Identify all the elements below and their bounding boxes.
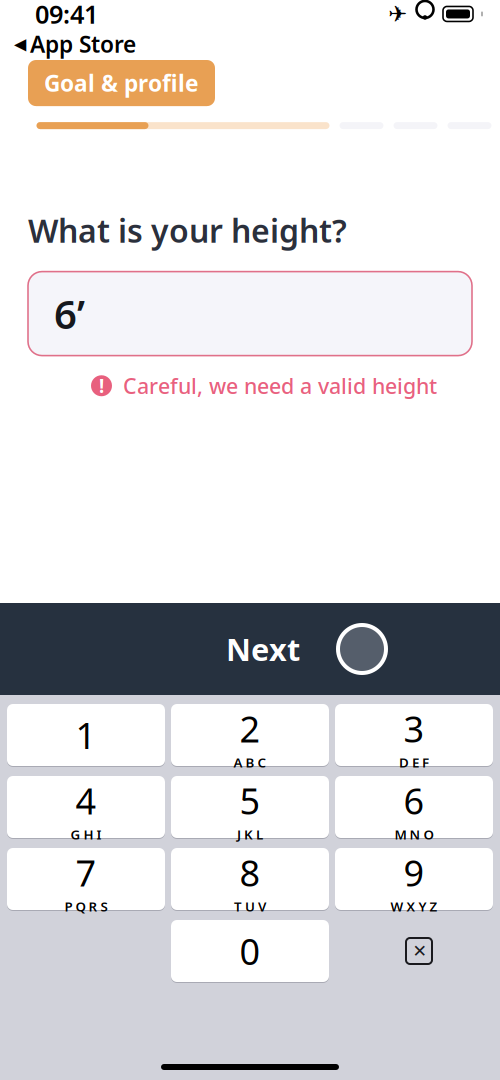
staticText: 2 bbox=[239, 705, 260, 752]
staticText: 9 bbox=[403, 849, 424, 896]
staticText: T U V bbox=[234, 898, 266, 915]
button[interactable]: Record bbox=[336, 623, 388, 675]
button[interactable]: 0 bbox=[171, 919, 329, 983]
button[interactable]: Delete bbox=[335, 919, 493, 983]
staticText: Careful, we need a valid height bbox=[123, 372, 437, 400]
button[interactable]: 7 bbox=[7, 847, 165, 911]
button[interactable]: 4 bbox=[7, 775, 165, 839]
staticText: 5 bbox=[239, 777, 260, 824]
button[interactable]: Next bbox=[226, 629, 300, 669]
button[interactable]: 5 bbox=[171, 775, 329, 839]
staticText: 6’ bbox=[54, 287, 85, 340]
staticText: W X Y Z bbox=[390, 898, 437, 915]
staticText: 0 bbox=[239, 927, 260, 975]
staticText: ✕ bbox=[412, 941, 427, 961]
staticText: 09:41 bbox=[35, 0, 98, 31]
staticText: J K L bbox=[237, 826, 263, 843]
staticText: 7 bbox=[75, 849, 96, 896]
staticText: Goal & profile bbox=[44, 68, 199, 98]
staticText: M N O bbox=[394, 826, 433, 843]
staticText: A B C bbox=[233, 754, 266, 771]
button[interactable]: 9 bbox=[335, 847, 493, 911]
staticText: 4 bbox=[75, 777, 96, 824]
staticText: 8 bbox=[239, 849, 260, 896]
staticText: ! bbox=[99, 373, 104, 398]
staticText: Next bbox=[226, 629, 300, 669]
staticText: App Store bbox=[30, 29, 136, 59]
staticText: 3 bbox=[403, 705, 424, 752]
staticText: P Q R S bbox=[64, 898, 107, 915]
button[interactable]: 8 bbox=[171, 847, 329, 911]
staticText: G H I bbox=[70, 826, 101, 843]
staticText: 1 bbox=[75, 711, 96, 759]
button[interactable]: 6 bbox=[335, 775, 493, 839]
staticText: D E F bbox=[399, 754, 429, 771]
button[interactable]: 6’ bbox=[28, 272, 472, 356]
button[interactable]: 1 bbox=[7, 703, 165, 767]
button[interactable]: Goal & profile bbox=[28, 60, 215, 106]
staticText: 6 bbox=[403, 777, 424, 824]
staticText: ◀ bbox=[14, 35, 26, 53]
staticText: ✈ bbox=[388, 1, 407, 27]
staticText: What is your height? bbox=[28, 209, 347, 252]
button[interactable]: 2 bbox=[171, 703, 329, 767]
button[interactable]: 3 bbox=[335, 703, 493, 767]
